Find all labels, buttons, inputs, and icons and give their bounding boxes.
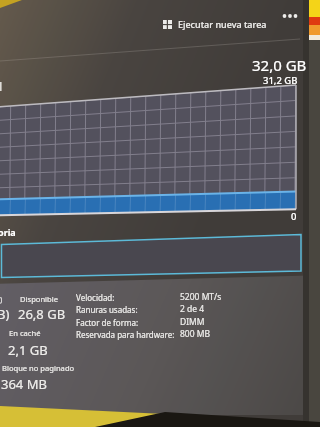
staticText: ) xyxy=(0,294,3,304)
staticText: B) xyxy=(0,305,10,323)
staticText: En caché xyxy=(9,328,41,338)
staticText: Ejecutar nueva tarea xyxy=(178,18,267,30)
staticText: 800 MB xyxy=(180,328,211,340)
staticText: Factor de forma: xyxy=(76,317,139,328)
button[interactable]: More options xyxy=(280,11,300,24)
staticText: 31,2 GB xyxy=(263,74,298,87)
staticText: 0 xyxy=(291,210,297,223)
staticText: 32,0 GB xyxy=(252,55,307,75)
staticText: Disponible xyxy=(20,294,58,304)
staticText: oria xyxy=(0,226,16,238)
staticText: Velocidad: xyxy=(76,292,115,303)
staticText: Bloque no paginado xyxy=(2,363,75,373)
staticText: DIMM xyxy=(180,316,205,328)
button[interactable]: Ejecutar nueva tarea xyxy=(163,18,267,30)
staticText: 2 de 4 xyxy=(180,303,205,315)
staticText: Reservada para hardware: xyxy=(76,329,175,340)
staticText: 5200 MT/s xyxy=(180,291,222,303)
staticText: 26,8 GB xyxy=(18,305,66,323)
staticText: 364 MB xyxy=(1,375,47,393)
staticText: 2,1 GB xyxy=(8,341,48,359)
staticText: Ranuras usadas: xyxy=(76,304,138,315)
